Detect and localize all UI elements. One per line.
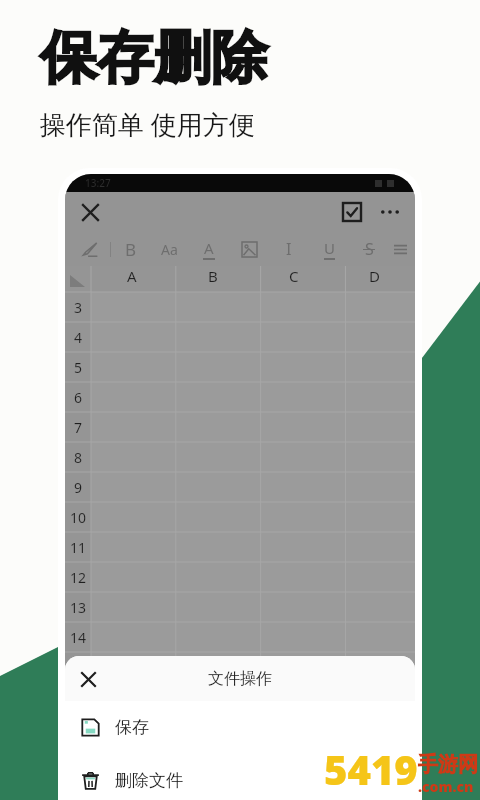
staticText: 10 (70, 508, 87, 527)
button[interactable]: Close (73, 195, 107, 229)
staticText: D (369, 266, 380, 286)
staticText: 手游网 (418, 752, 478, 777)
staticText: 4 (74, 328, 83, 347)
staticText: C (289, 266, 299, 286)
staticText: 14 (70, 628, 87, 647)
staticText: 12 (70, 568, 87, 587)
staticText: B (125, 238, 137, 261)
staticText: 13:27 (85, 176, 111, 190)
staticText: U (324, 238, 335, 258)
staticText: .com.cn (418, 777, 474, 796)
staticText: 删除文件 (115, 770, 183, 791)
staticText: 文件操作 (208, 669, 272, 689)
button[interactable]: Confirm (337, 197, 367, 227)
button[interactable]: 删除文件 (65, 754, 415, 800)
staticText: 5 (74, 358, 83, 377)
staticText: 13 (70, 598, 87, 617)
staticText: 3 (74, 298, 83, 317)
button[interactable]: pen (69, 232, 110, 266)
button[interactable]: B (111, 232, 150, 266)
staticText: A (127, 266, 137, 286)
staticText: B (208, 266, 218, 286)
button[interactable]: S (349, 232, 389, 266)
staticText: 8 (74, 448, 83, 467)
button[interactable]: A_ (189, 232, 229, 266)
button[interactable]: I (269, 232, 309, 266)
button[interactable]: More options (373, 195, 407, 229)
button[interactable]: img (229, 232, 269, 266)
staticText: 保存 (115, 717, 149, 738)
staticText: I (286, 238, 292, 260)
staticText: 6 (74, 388, 83, 407)
staticText: A (204, 238, 214, 258)
button[interactable]: menu (389, 232, 411, 266)
staticText: 7 (74, 418, 83, 437)
staticText: 5419 (324, 742, 418, 796)
staticText: 保存删除 (40, 22, 268, 94)
button[interactable]: 保存 (65, 701, 415, 754)
staticText: S (365, 238, 374, 260)
button[interactable]: Close sheet (71, 662, 105, 696)
staticText: 9 (74, 478, 83, 497)
button[interactable]: Aa (150, 232, 189, 266)
staticText: Aa (161, 240, 178, 259)
button[interactable]: U (309, 232, 349, 266)
staticText: 操作简单 使用方便 (40, 106, 255, 142)
staticText: 11 (70, 538, 87, 557)
